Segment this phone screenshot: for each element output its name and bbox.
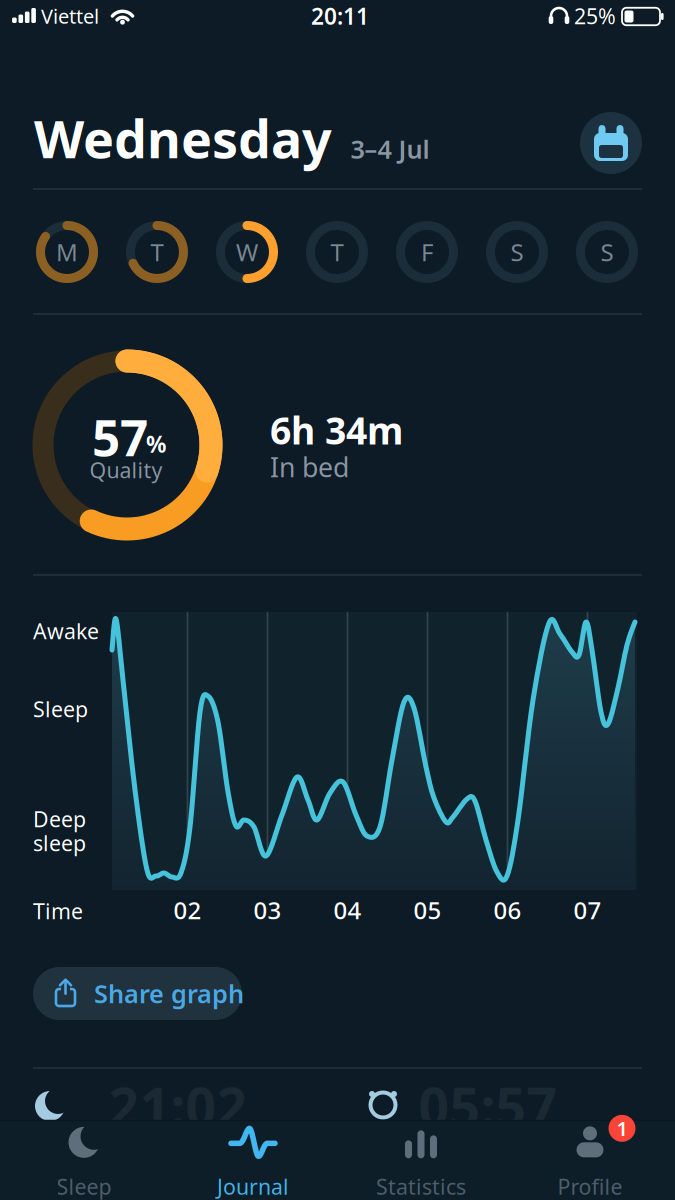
button[interactable]: S bbox=[575, 220, 639, 284]
button[interactable]: 1 bbox=[515, 1125, 665, 1200]
staticText: 05:57 bbox=[418, 1071, 557, 1141]
staticText: 07 bbox=[573, 894, 601, 926]
staticText: 20:11 bbox=[311, 1, 369, 31]
staticText: Awake bbox=[33, 617, 99, 645]
button[interactable]: Journal bbox=[178, 1125, 328, 1200]
staticText: sleep bbox=[33, 829, 86, 857]
staticText: 04 bbox=[333, 894, 361, 926]
staticText: T bbox=[330, 236, 343, 268]
button[interactable]: Calendar bbox=[580, 112, 642, 174]
staticText: Profile bbox=[557, 1172, 622, 1200]
staticText: 6h 34m bbox=[270, 405, 403, 455]
staticText: 06 bbox=[493, 894, 521, 926]
staticText: Share graph bbox=[94, 977, 244, 1010]
staticText: 05 bbox=[413, 894, 441, 926]
staticText: F bbox=[421, 236, 433, 268]
staticText: Time bbox=[33, 897, 83, 925]
staticText: S bbox=[510, 236, 523, 268]
button[interactable]: T bbox=[125, 220, 189, 284]
staticText: 1 bbox=[616, 1115, 627, 1142]
staticText: S bbox=[600, 236, 613, 268]
staticText: 03 bbox=[253, 894, 281, 926]
button[interactable]: S bbox=[485, 220, 549, 284]
button[interactable]: Sleep bbox=[9, 1125, 159, 1200]
button[interactable]: F bbox=[395, 220, 459, 284]
staticText: Sleep bbox=[56, 1172, 111, 1200]
button[interactable]: Share graph bbox=[33, 967, 242, 1020]
staticText: Deep bbox=[33, 805, 86, 833]
staticText: 02 bbox=[173, 894, 201, 926]
staticText: Quality bbox=[89, 456, 162, 484]
staticText: % bbox=[146, 429, 166, 459]
button[interactable]: Statistics bbox=[346, 1125, 496, 1200]
staticText: Statistics bbox=[376, 1172, 466, 1200]
staticText: M bbox=[56, 236, 78, 268]
staticText: Wednesday bbox=[34, 103, 332, 173]
staticText: T bbox=[150, 236, 163, 268]
button[interactable]: T bbox=[305, 220, 369, 284]
staticText: 21:02 bbox=[108, 1071, 247, 1141]
staticText: 25% bbox=[574, 2, 616, 30]
staticText: W bbox=[236, 236, 258, 268]
staticText: 57 bbox=[92, 404, 148, 470]
button[interactable]: M bbox=[35, 220, 99, 284]
staticText: Sleep bbox=[33, 695, 88, 723]
staticText: In bed bbox=[270, 449, 349, 485]
staticText: Journal bbox=[217, 1172, 289, 1200]
staticText: 3–4 Jul bbox=[350, 132, 429, 166]
button[interactable]: W bbox=[215, 220, 279, 284]
staticText: Viettel bbox=[41, 3, 99, 29]
